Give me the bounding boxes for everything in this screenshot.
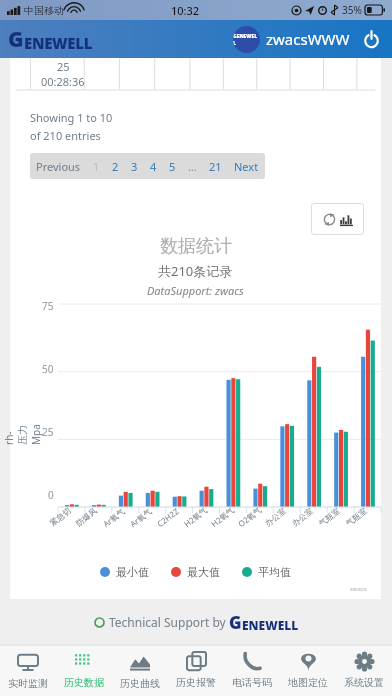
staticText: 电话号码	[232, 676, 272, 689]
staticText: 3	[131, 159, 138, 174]
staticText: 75	[42, 299, 54, 313]
staticText: G	[229, 611, 242, 634]
staticText: 21	[209, 159, 222, 174]
staticText: 5	[169, 159, 176, 174]
staticText: 25	[57, 59, 70, 74]
staticText: H2氧气温度	[208, 504, 236, 529]
staticText: 4	[150, 159, 157, 174]
staticText: Showing 1 to 10	[30, 110, 113, 125]
staticText: Previous	[36, 159, 81, 174]
staticText: Technical Support by	[109, 614, 229, 630]
button[interactable]: 最小值	[100, 565, 149, 579]
button[interactable]: Logout	[358, 26, 384, 52]
button[interactable]: 实时监测	[0, 645, 56, 696]
staticText: 气瓶室湿度	[344, 504, 371, 528]
button[interactable]: Refresh chart	[311, 203, 364, 235]
staticText: 最大值	[187, 565, 220, 579]
staticText: 0	[48, 488, 54, 502]
button[interactable]: 4	[144, 153, 163, 179]
staticText: 办公室温度	[263, 504, 290, 528]
staticText: 平均值	[258, 565, 291, 579]
staticText: 历史曲线	[120, 677, 160, 690]
staticText: of 210 entries	[30, 128, 101, 143]
button[interactable]: 平均值	[242, 565, 291, 579]
staticText: Ar氧气_左压力	[127, 504, 155, 529]
button[interactable]: 2	[106, 153, 125, 179]
staticText: H2氧气压力	[181, 504, 209, 529]
staticText: DataSupport: zwacs	[147, 283, 244, 298]
button[interactable]: 历史报警	[168, 645, 224, 696]
staticText: 办公室湿度	[290, 504, 317, 528]
staticText: ENEWELL	[242, 617, 299, 633]
staticText: 气瓶室温度	[317, 504, 344, 528]
button[interactable]: 电话号码	[224, 645, 280, 696]
staticText: 地图定位	[288, 676, 328, 689]
button[interactable]: 系统设置	[336, 645, 392, 696]
staticText: 35%	[342, 3, 362, 17]
button[interactable]: 历史数据	[56, 645, 112, 696]
button[interactable]: 地图定位	[280, 645, 336, 696]
button[interactable]: 21	[203, 153, 228, 179]
button[interactable]: 3	[125, 153, 144, 179]
button[interactable]: 历史曲线	[112, 645, 168, 696]
staticText: 历史报警	[176, 676, 216, 689]
staticText: GENEWELL	[233, 33, 260, 47]
staticText: C2H2Z_体浓度	[154, 504, 182, 529]
staticText: Next	[234, 159, 259, 174]
staticText: …	[188, 159, 197, 174]
staticText: Ar氧气_右压力	[100, 504, 128, 529]
staticText: 数据统计	[160, 235, 232, 258]
staticText: 实时监测	[8, 677, 48, 690]
staticText: 温度 (°C)-湿度%rh-压力Mpa	[0, 423, 43, 445]
staticText: 25	[42, 425, 54, 439]
staticText: 2	[112, 159, 119, 174]
staticText: 中国移动	[24, 4, 64, 17]
button[interactable]: …	[182, 153, 203, 179]
button[interactable]: Next	[228, 153, 265, 179]
staticText: O2氧气压力	[235, 504, 263, 529]
staticText: 共210条记录	[158, 262, 233, 280]
button[interactable]: Previous	[30, 153, 87, 179]
button[interactable]: 1	[87, 153, 106, 179]
staticText: zwacs	[350, 585, 367, 593]
staticText: 00:28:36	[41, 74, 85, 89]
button[interactable]: 5	[163, 153, 182, 179]
staticText: 防爆风机	[74, 504, 101, 528]
button[interactable]: zwacsWWW	[266, 29, 350, 49]
staticText: 系统设置	[344, 676, 384, 689]
staticText: ENEWELL	[24, 33, 93, 53]
staticText: 1	[93, 159, 100, 174]
staticText: G	[8, 25, 24, 54]
staticText: 10:32	[171, 3, 200, 18]
staticText: 历史数据	[64, 676, 104, 689]
button[interactable]: G	[8, 25, 93, 54]
staticText: 紧急切断阀	[48, 504, 74, 528]
staticText: 50	[42, 362, 54, 376]
staticText: 最小值	[116, 565, 149, 579]
button[interactable]: 最大值	[171, 565, 220, 579]
